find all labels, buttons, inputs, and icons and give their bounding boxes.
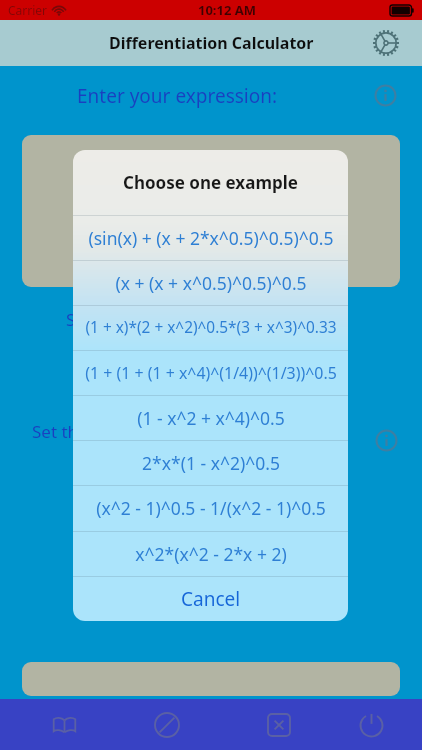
staticText: Choose one example bbox=[123, 171, 298, 194]
button[interactable]: (x + (x + x^0.5)^0.5)^0.5 bbox=[73, 260, 348, 305]
button[interactable]: Manual bbox=[0, 699, 108, 750]
staticText: (x^2 - 1)^0.5 - 1/(x^2 - 1)^0.5 bbox=[96, 496, 326, 520]
button[interactable]: Settings bbox=[372, 29, 400, 57]
staticText: (1 - x^2 + x^4)^0.5 bbox=[137, 406, 285, 430]
staticText: Carrier bbox=[8, 2, 48, 18]
staticText: (sin(x) + (x + 2*x^0.5)^0.5)^0.5 bbox=[88, 226, 334, 250]
staticText: 2*x*(1 - x^2)^0.5 bbox=[142, 451, 280, 475]
staticText: Enter your expression: bbox=[77, 83, 278, 109]
button[interactable] bbox=[22, 135, 400, 287]
staticText: Set the number of points of the graph bbox=[32, 420, 335, 443]
button[interactable]: x^2*(x^2 - 2*x + 2) bbox=[73, 531, 348, 576]
staticText: (1 + x)*(2 + x^2)^0.5*(3 + x^3)^0.33 bbox=[85, 317, 337, 338]
button[interactable] bbox=[22, 662, 400, 696]
staticText: (1 + (1 + (1 + x^4)^(1/4))^(1/3))^0.5 bbox=[85, 362, 337, 384]
button[interactable]: Info about points bbox=[375, 429, 398, 452]
button[interactable]: Exit bbox=[324, 699, 422, 750]
staticText: x^2*(x^2 - 2*x + 2) bbox=[135, 542, 287, 566]
staticText: Set the interval (from, to) bbox=[66, 308, 266, 331]
button[interactable]: Derivative bbox=[108, 699, 216, 750]
button[interactable]: (1 + x)*(2 + x^2)^0.5*(3 + x^3)^0.33 bbox=[73, 305, 348, 350]
button[interactable]: Info about expression bbox=[374, 84, 397, 107]
staticText: Cancel bbox=[181, 586, 241, 612]
button[interactable]: 2*x*(1 - x^2)^0.5 bbox=[73, 440, 348, 485]
staticText: Differentiation Calculator bbox=[109, 32, 314, 54]
button[interactable]: (1 - x^2 + x^4)^0.5 bbox=[73, 395, 348, 440]
button[interactable]: Clear bbox=[216, 699, 324, 750]
button[interactable]: (sin(x) + (x + 2*x^0.5)^0.5)^0.5 bbox=[73, 215, 348, 260]
button[interactable]: (x^2 - 1)^0.5 - 1/(x^2 - 1)^0.5 bbox=[73, 485, 348, 530]
button[interactable]: Cancel bbox=[73, 576, 348, 621]
staticText: 10:12 AM bbox=[198, 1, 257, 19]
staticText: (x + (x + x^0.5)^0.5)^0.5 bbox=[115, 271, 307, 295]
button[interactable]: (1 + (1 + (1 + x^4)^(1/4))^(1/3))^0.5 bbox=[73, 350, 348, 395]
